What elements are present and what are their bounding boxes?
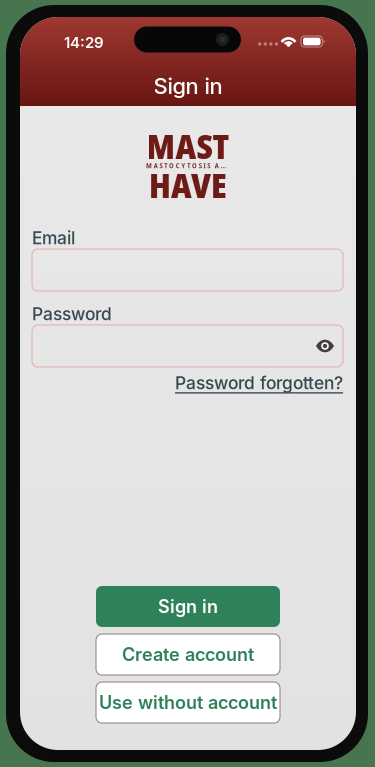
staticText: 14:29 (64, 33, 104, 52)
staticText: Sign in (158, 596, 218, 617)
staticText: M A S T O C Y T O S I S A P P (146, 161, 230, 170)
staticText: Create account (122, 644, 254, 665)
button[interactable]: Sign in (96, 586, 280, 627)
staticText: Use without account (99, 692, 277, 713)
button[interactable]: Password forgotten? (32, 373, 343, 393)
staticText: HAVE (149, 162, 227, 208)
staticText: Email (32, 227, 75, 248)
button[interactable]: Use without account (96, 682, 280, 723)
staticText: Password forgotten? (175, 372, 343, 393)
button[interactable]: Create account (96, 634, 280, 675)
staticText: Sign in (153, 73, 222, 99)
button[interactable]: Show password (309, 330, 341, 362)
staticText: Password (32, 303, 112, 324)
staticText: MAST (146, 123, 229, 169)
